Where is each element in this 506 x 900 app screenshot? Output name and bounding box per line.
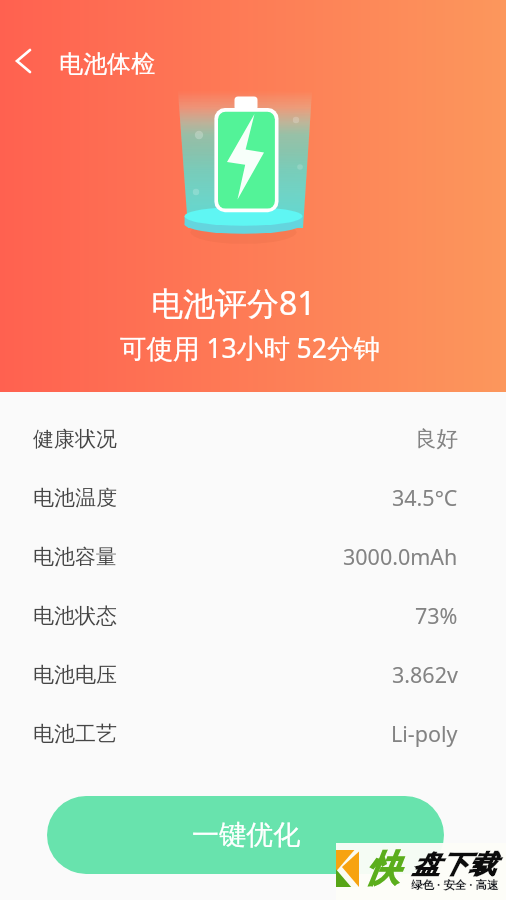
staticText: 绿色 · 安全 · 高速	[411, 877, 499, 893]
staticText: 73%	[415, 601, 458, 630]
staticText: 良好	[415, 425, 458, 452]
staticText: 一键优化	[192, 818, 300, 852]
staticText: 可使用 13小时 52分钟	[120, 330, 380, 366]
staticText: 盘下载	[412, 849, 496, 880]
staticText: 电池评分81	[151, 281, 316, 325]
staticText: 电池电压	[33, 662, 117, 688]
staticText: 电池状态	[33, 603, 117, 629]
staticText: 电池温度	[33, 485, 117, 511]
staticText: 电池工艺	[33, 721, 117, 747]
button[interactable]: 电池状态	[0, 586, 506, 645]
button[interactable]: 健康状况	[0, 409, 506, 468]
button[interactable]: 电池温度	[0, 468, 506, 527]
staticText: 快	[366, 846, 399, 892]
button[interactable]: 一键优化	[47, 796, 444, 874]
staticText: 健康状况	[33, 426, 117, 452]
staticText: Li-poly	[391, 719, 458, 748]
staticText: 3.862v	[392, 660, 458, 689]
staticText: 34.5°C	[392, 483, 458, 512]
button[interactable]: 电池电压	[0, 645, 506, 704]
button[interactable]: 电池工艺	[0, 704, 506, 763]
button[interactable]: Back	[4, 41, 44, 81]
button[interactable]: 电池容量	[0, 527, 506, 586]
staticText: 电池体检	[59, 49, 155, 79]
staticText: 电池容量	[33, 544, 117, 570]
staticText: 3000.0mAh	[343, 542, 458, 571]
